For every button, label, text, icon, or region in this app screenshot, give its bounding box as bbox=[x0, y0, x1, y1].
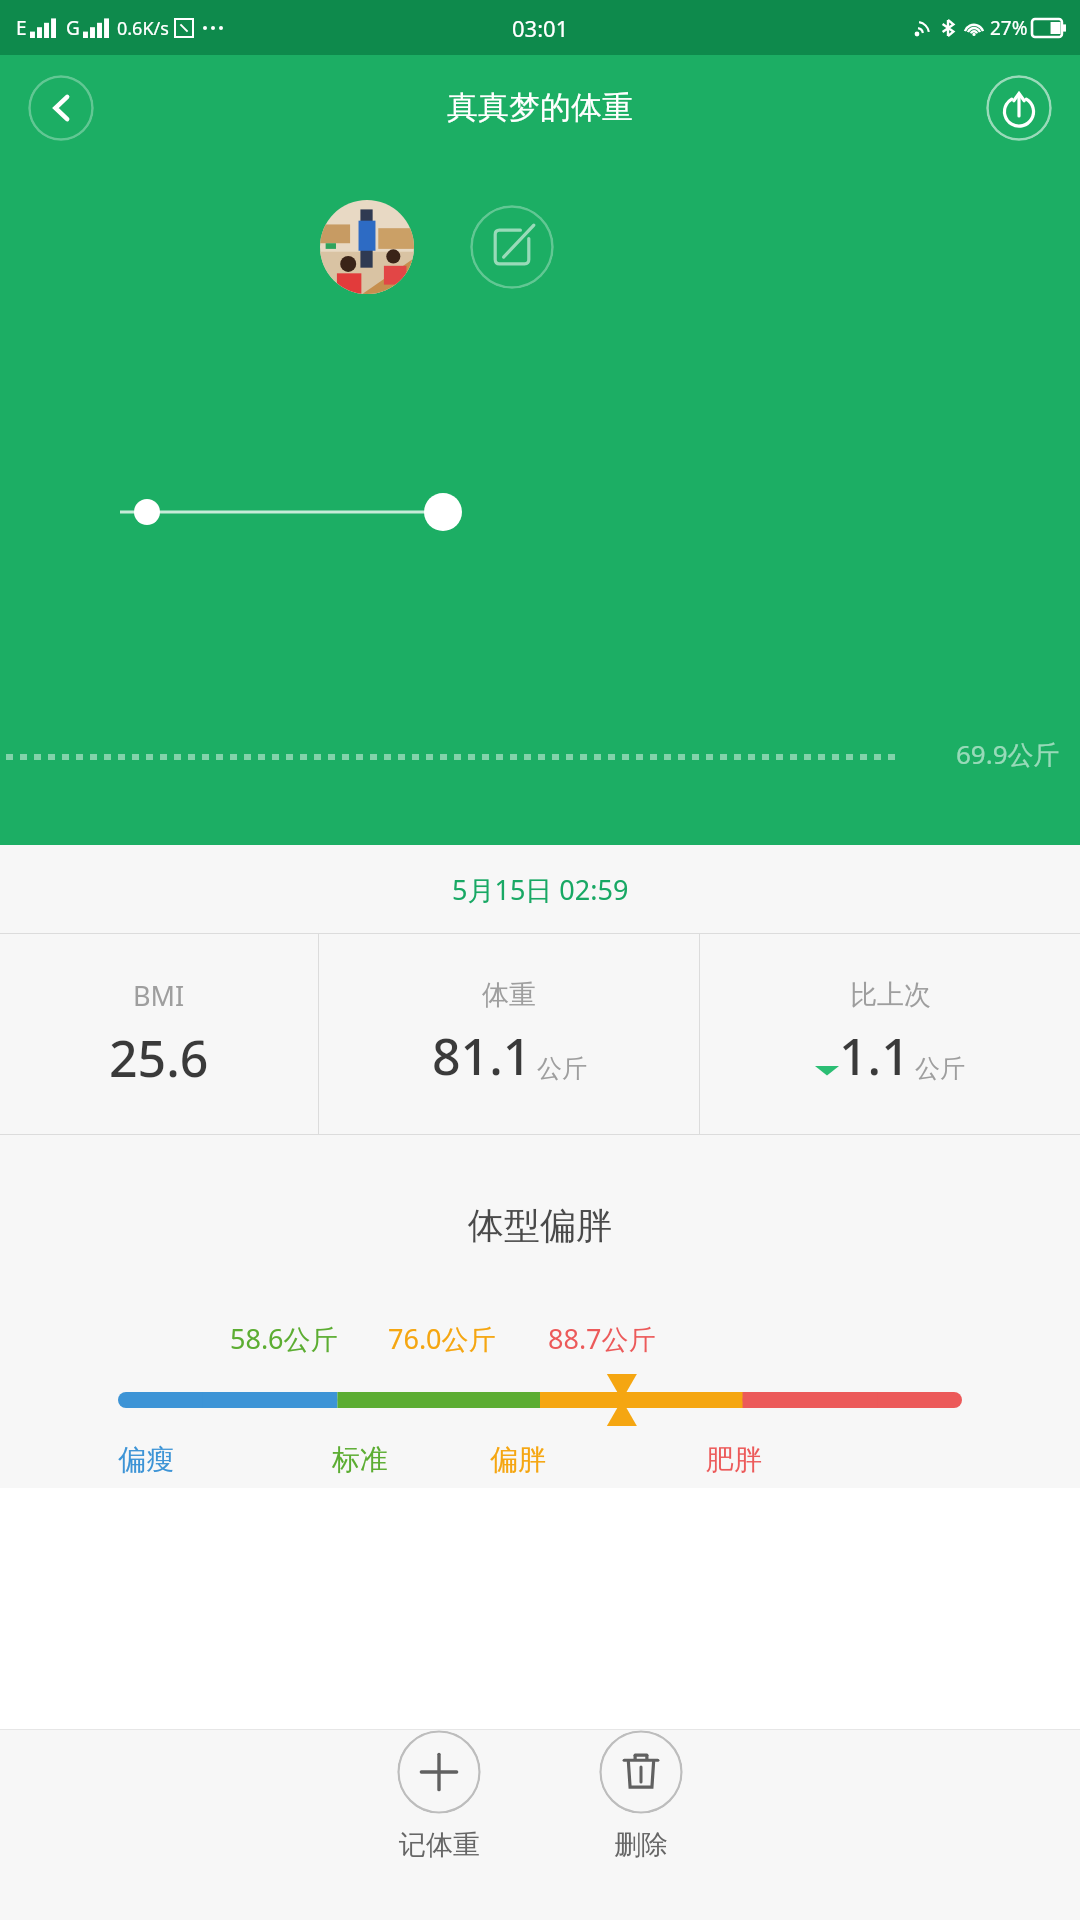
staticText: 公斤 bbox=[915, 1053, 965, 1084]
staticText: 偏瘦 bbox=[118, 1442, 174, 1477]
staticText: 1.1 bbox=[839, 1022, 910, 1090]
button[interactable]: Avatar bbox=[320, 200, 414, 294]
staticText: 03:01 bbox=[512, 13, 569, 43]
staticText: BMI bbox=[133, 977, 185, 1014]
button[interactable]: 删除 bbox=[566, 1730, 716, 1862]
staticText: 记体重 bbox=[399, 1828, 480, 1862]
staticText: 偏胖 bbox=[490, 1442, 546, 1477]
staticText: 比上次 bbox=[850, 978, 931, 1012]
staticText: 81.1 bbox=[432, 1022, 532, 1090]
staticText: 删除 bbox=[614, 1828, 668, 1862]
staticText: 体重 bbox=[482, 978, 536, 1012]
button[interactable]: Share bbox=[986, 75, 1052, 141]
button[interactable]: 比上次 bbox=[700, 934, 1080, 1134]
staticText: 5月15日 02:59 bbox=[452, 871, 629, 908]
staticText: 76.0公斤 bbox=[388, 1320, 496, 1357]
button[interactable]: Back bbox=[28, 75, 94, 141]
staticText: E bbox=[16, 15, 27, 41]
staticText: 88.7公斤 bbox=[548, 1320, 656, 1357]
staticText: 公斤 bbox=[537, 1053, 587, 1084]
staticText: 标准 bbox=[332, 1442, 388, 1477]
staticText: 真真梦的体重 bbox=[447, 88, 633, 127]
button[interactable]: 记体重 bbox=[364, 1730, 514, 1862]
staticText: 肥胖 bbox=[706, 1442, 762, 1477]
staticText: 0.6K/s bbox=[117, 16, 169, 41]
staticText: 27% bbox=[990, 15, 1028, 41]
staticText: G bbox=[66, 15, 80, 41]
button[interactable]: Edit bbox=[470, 205, 554, 289]
button[interactable]: 体重 bbox=[319, 934, 699, 1134]
staticText: 体型偏胖 bbox=[0, 1203, 1080, 1248]
staticText: 58.6公斤 bbox=[230, 1320, 338, 1357]
staticText: 25.6 bbox=[109, 1024, 209, 1092]
button[interactable]: BMI bbox=[0, 934, 318, 1134]
staticText: 69.9公斤 bbox=[956, 736, 1060, 772]
